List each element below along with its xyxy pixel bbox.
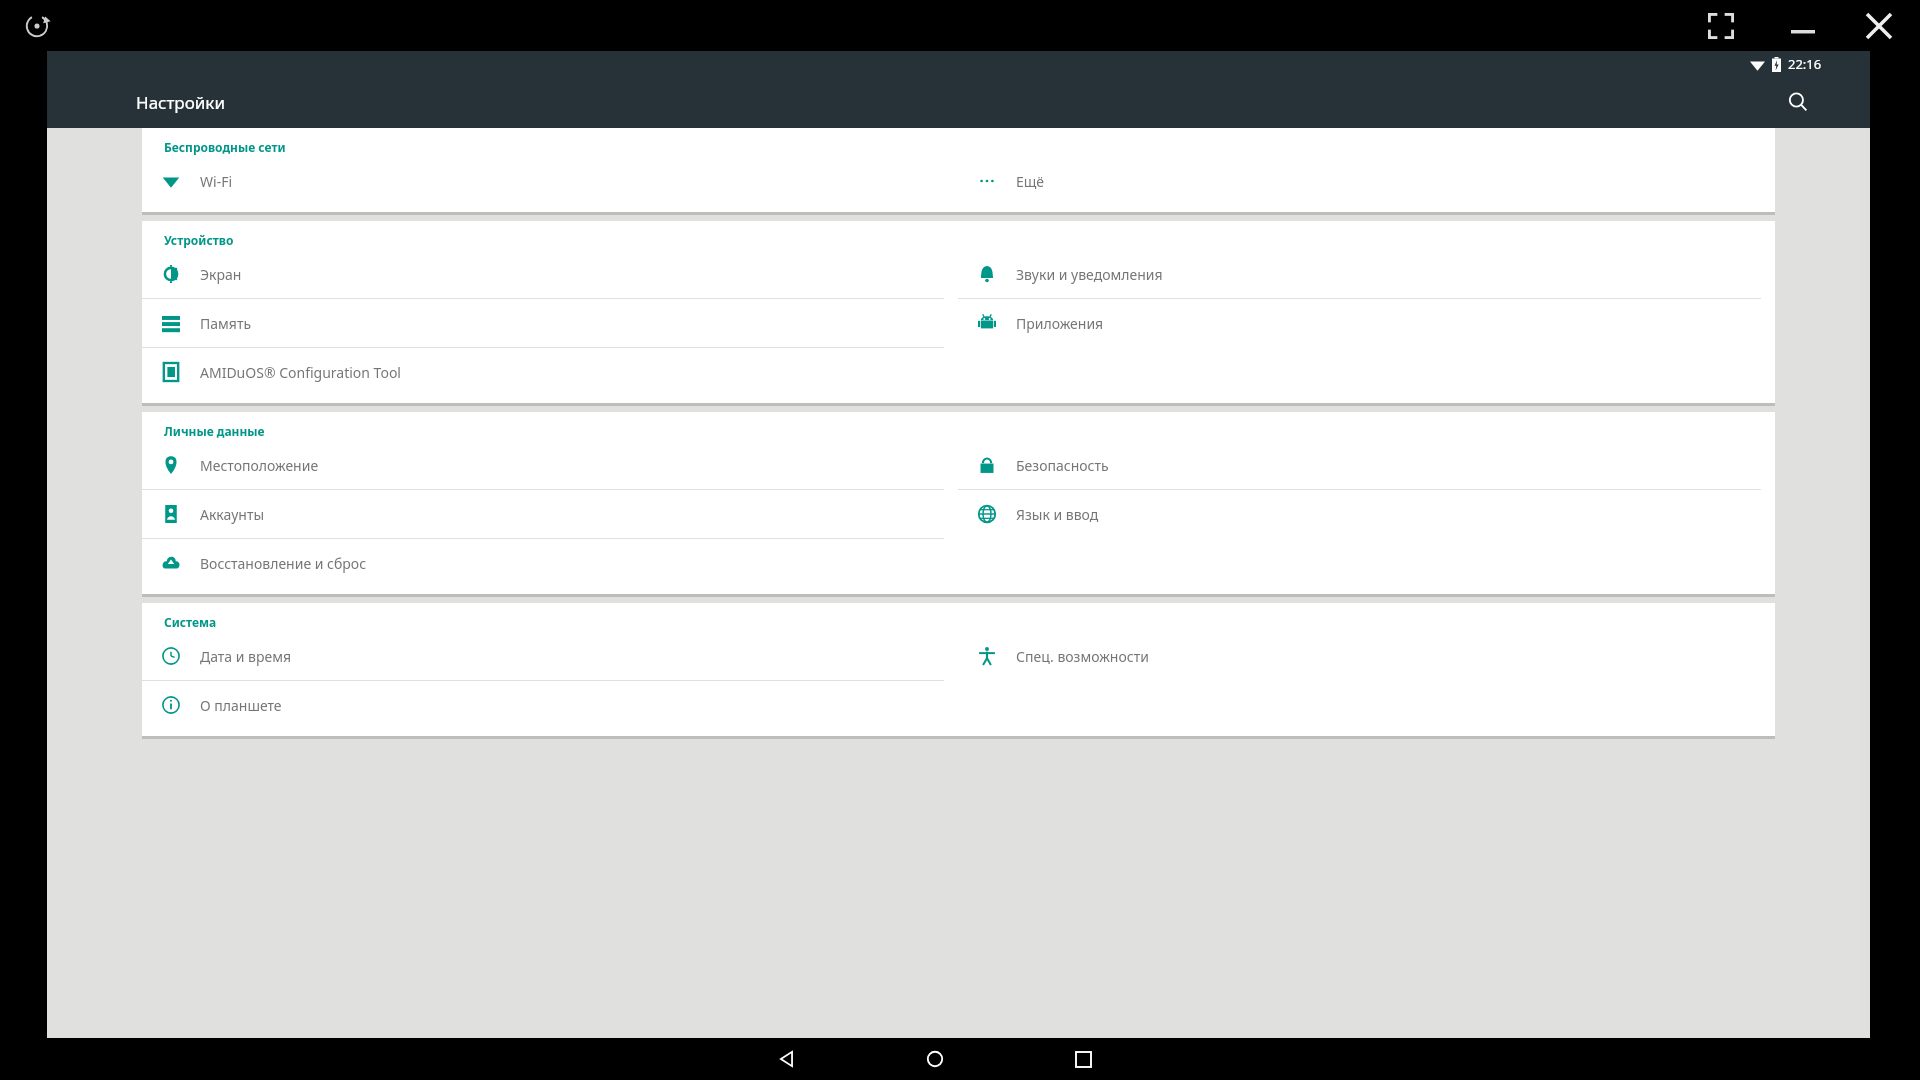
button[interactable]: Аккаунты bbox=[142, 490, 958, 538]
button[interactable]: Rotate bbox=[20, 9, 54, 43]
staticText: Звуки и уведомления bbox=[1016, 265, 1163, 284]
staticText: Экран bbox=[200, 265, 242, 284]
staticText: Настройки bbox=[136, 91, 225, 114]
button[interactable]: AMIDuOS® Configuration Tool bbox=[142, 348, 958, 396]
staticText: Безопасность bbox=[1016, 456, 1109, 475]
staticText: Wi-Fi bbox=[200, 172, 233, 191]
button[interactable]: Безопасность bbox=[958, 441, 1775, 489]
button[interactable]: Ещё bbox=[958, 157, 1775, 205]
button[interactable]: Поиск bbox=[1778, 82, 1818, 122]
staticText: AMIDuOS® Configuration Tool bbox=[200, 363, 401, 382]
staticText: 22:16 bbox=[1788, 55, 1822, 73]
staticText: Система bbox=[164, 614, 217, 630]
button[interactable]: Язык и ввод bbox=[958, 490, 1775, 538]
staticText: Дата и время bbox=[200, 647, 292, 666]
staticText: Аккаунты bbox=[200, 505, 265, 524]
button[interactable]: О планшете bbox=[142, 681, 958, 729]
button[interactable]: Обзор bbox=[1051, 1038, 1115, 1080]
staticText: Спец. возможности bbox=[1016, 647, 1149, 666]
staticText: Устройство bbox=[164, 232, 234, 248]
button[interactable]: Wi-Fi bbox=[142, 157, 958, 205]
staticText: Приложения bbox=[1016, 314, 1104, 333]
staticText: Беспроводные сети bbox=[164, 139, 286, 155]
button[interactable]: Главный экран bbox=[903, 1038, 967, 1080]
button[interactable]: Дата и время bbox=[142, 632, 958, 680]
button[interactable]: Приложения bbox=[958, 299, 1775, 347]
staticText: О планшете bbox=[200, 696, 282, 715]
staticText: Память bbox=[200, 314, 252, 333]
button[interactable]: Восстановление и сброс bbox=[142, 539, 958, 587]
button[interactable]: Fullscreen bbox=[1698, 3, 1744, 49]
button[interactable]: Close bbox=[1856, 3, 1902, 49]
staticText: Местоположение bbox=[200, 456, 319, 475]
button[interactable]: Назад bbox=[755, 1038, 819, 1080]
button[interactable]: Спец. возможности bbox=[958, 632, 1775, 680]
button[interactable]: Местоположение bbox=[142, 441, 958, 489]
staticText: Ещё bbox=[1016, 172, 1045, 191]
button[interactable]: Звуки и уведомления bbox=[958, 250, 1775, 298]
button[interactable]: Minimize bbox=[1780, 3, 1826, 49]
staticText: Восстановление и сброс bbox=[200, 554, 367, 573]
button[interactable]: Память bbox=[142, 299, 958, 347]
staticText: Язык и ввод bbox=[1016, 505, 1099, 524]
staticText: Личные данные bbox=[164, 423, 265, 439]
button[interactable]: Экран bbox=[142, 250, 958, 298]
